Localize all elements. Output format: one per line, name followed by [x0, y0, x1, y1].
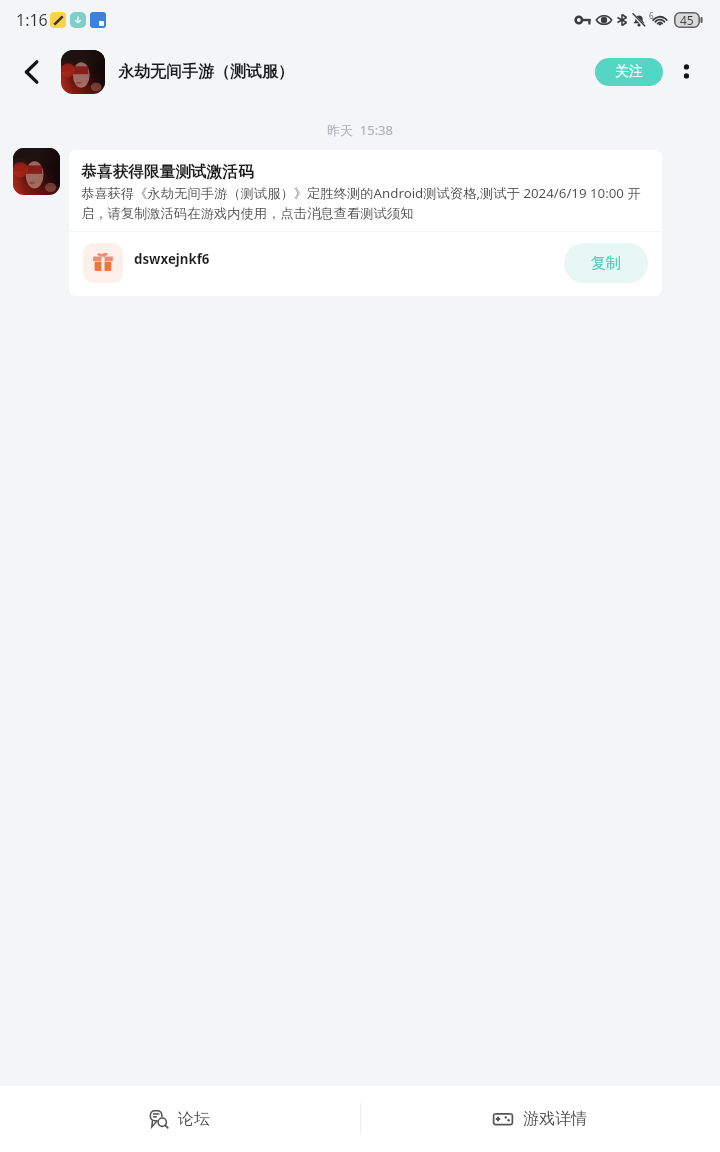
- staticText: dswxejnkf6: [134, 250, 210, 268]
- staticText: 昨天 15:38: [0, 121, 720, 139]
- button[interactable]: 游戏详情: [360, 1086, 720, 1152]
- staticText: 复制: [591, 254, 621, 273]
- button[interactable]: 论坛: [0, 1086, 360, 1152]
- staticText: 恭喜获得《永劫无间手游（测试服）》定胜终测的Android测试资格,测试于 20…: [81, 184, 650, 222]
- staticText: 6: [649, 10, 654, 21]
- button[interactable]: More options: [663, 48, 711, 96]
- staticText: 45: [680, 12, 694, 28]
- staticText: 关注: [615, 63, 643, 81]
- staticText: 游戏详情: [523, 1109, 587, 1129]
- staticText: 恭喜获得限量测试激活码: [81, 162, 254, 182]
- button[interactable]: 复制: [564, 243, 648, 283]
- button[interactable]: 恭喜获得限量测试激活码: [69, 150, 662, 296]
- button[interactable]: 关注: [595, 58, 663, 86]
- staticText: 永劫无间手游（测试服）: [118, 62, 294, 82]
- staticText: 1:16: [16, 9, 48, 31]
- staticText: 论坛: [178, 1109, 210, 1129]
- button[interactable]: Back: [10, 50, 54, 94]
